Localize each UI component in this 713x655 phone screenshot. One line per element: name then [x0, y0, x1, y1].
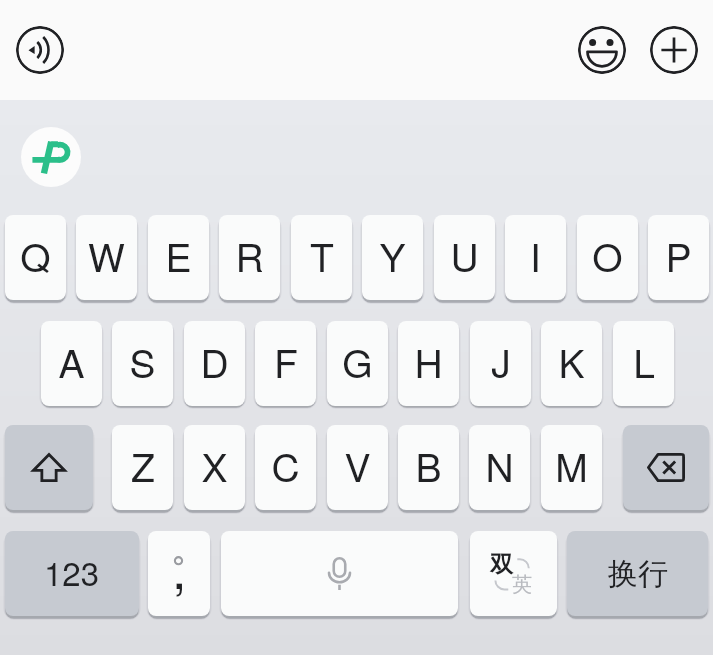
staticText: H — [414, 333, 443, 389]
button[interactable]: G — [327, 321, 388, 406]
button[interactable]: T — [291, 215, 352, 300]
staticText: W — [88, 227, 125, 283]
button[interactable]: M — [541, 425, 602, 510]
button[interactable]: A — [41, 321, 102, 406]
button[interactable]: X — [184, 425, 245, 510]
button[interactable]: C — [255, 425, 316, 510]
button[interactable]: K — [541, 321, 602, 406]
button[interactable]: R — [219, 215, 280, 300]
staticText: X — [201, 437, 228, 493]
button[interactable]: D — [184, 321, 245, 406]
button[interactable]: J — [470, 321, 531, 406]
button[interactable]: O — [577, 215, 638, 300]
button[interactable]: W — [76, 215, 137, 300]
button[interactable]: Numbers and symbols — [5, 531, 139, 616]
button[interactable]: Comma — [148, 531, 210, 616]
staticText: R — [235, 227, 264, 283]
staticText: 换行 — [608, 555, 668, 593]
button[interactable]: B — [398, 425, 459, 510]
button[interactable]: L — [613, 321, 674, 406]
staticText: S — [129, 333, 156, 389]
button[interactable]: I — [505, 215, 566, 300]
staticText: D — [200, 333, 229, 389]
button[interactable]: Space — [221, 531, 458, 616]
staticText: O — [592, 227, 623, 283]
button[interactable]: Backspace — [623, 425, 709, 510]
staticText: K — [558, 333, 585, 389]
button[interactable]: H — [398, 321, 459, 406]
button[interactable]: Enter — [567, 531, 708, 616]
staticText: Y — [379, 227, 406, 283]
staticText: Q — [20, 227, 51, 283]
button[interactable]: Shift — [5, 425, 93, 510]
button[interactable]: Add — [650, 26, 698, 74]
button[interactable]: Keyboard logo — [21, 127, 81, 187]
staticText: N — [485, 437, 514, 493]
staticText: G — [342, 333, 373, 389]
button[interactable]: V — [327, 425, 388, 510]
staticText: F — [274, 333, 298, 389]
staticText: C — [271, 437, 300, 493]
button[interactable]: N — [469, 425, 530, 510]
staticText: 英 — [512, 572, 532, 597]
staticText: A — [58, 333, 85, 389]
button[interactable]: E — [148, 215, 209, 300]
button[interactable]: S — [112, 321, 173, 406]
button[interactable]: Emoji — [578, 26, 626, 74]
button[interactable]: Q — [5, 215, 66, 300]
button[interactable]: P — [648, 215, 709, 300]
button[interactable]: U — [434, 215, 495, 300]
staticText: I — [530, 227, 541, 283]
button[interactable]: F — [255, 321, 316, 406]
staticText: T — [310, 227, 334, 283]
staticText: 123 — [44, 548, 100, 595]
staticText: 双 — [490, 550, 513, 579]
staticText: V — [344, 437, 371, 493]
staticText: J — [491, 333, 511, 389]
staticText: B — [415, 437, 442, 493]
staticText: L — [633, 333, 655, 389]
button[interactable]: Y — [362, 215, 423, 300]
button[interactable]: Switch input language — [470, 531, 557, 616]
staticText: U — [450, 227, 479, 283]
staticText: , — [172, 531, 187, 603]
staticText: E — [165, 227, 192, 283]
staticText: P — [665, 227, 692, 283]
staticText: M — [555, 437, 588, 493]
staticText: Z — [131, 437, 155, 493]
button[interactable]: Z — [112, 425, 173, 510]
button[interactable]: Sound — [16, 26, 64, 74]
